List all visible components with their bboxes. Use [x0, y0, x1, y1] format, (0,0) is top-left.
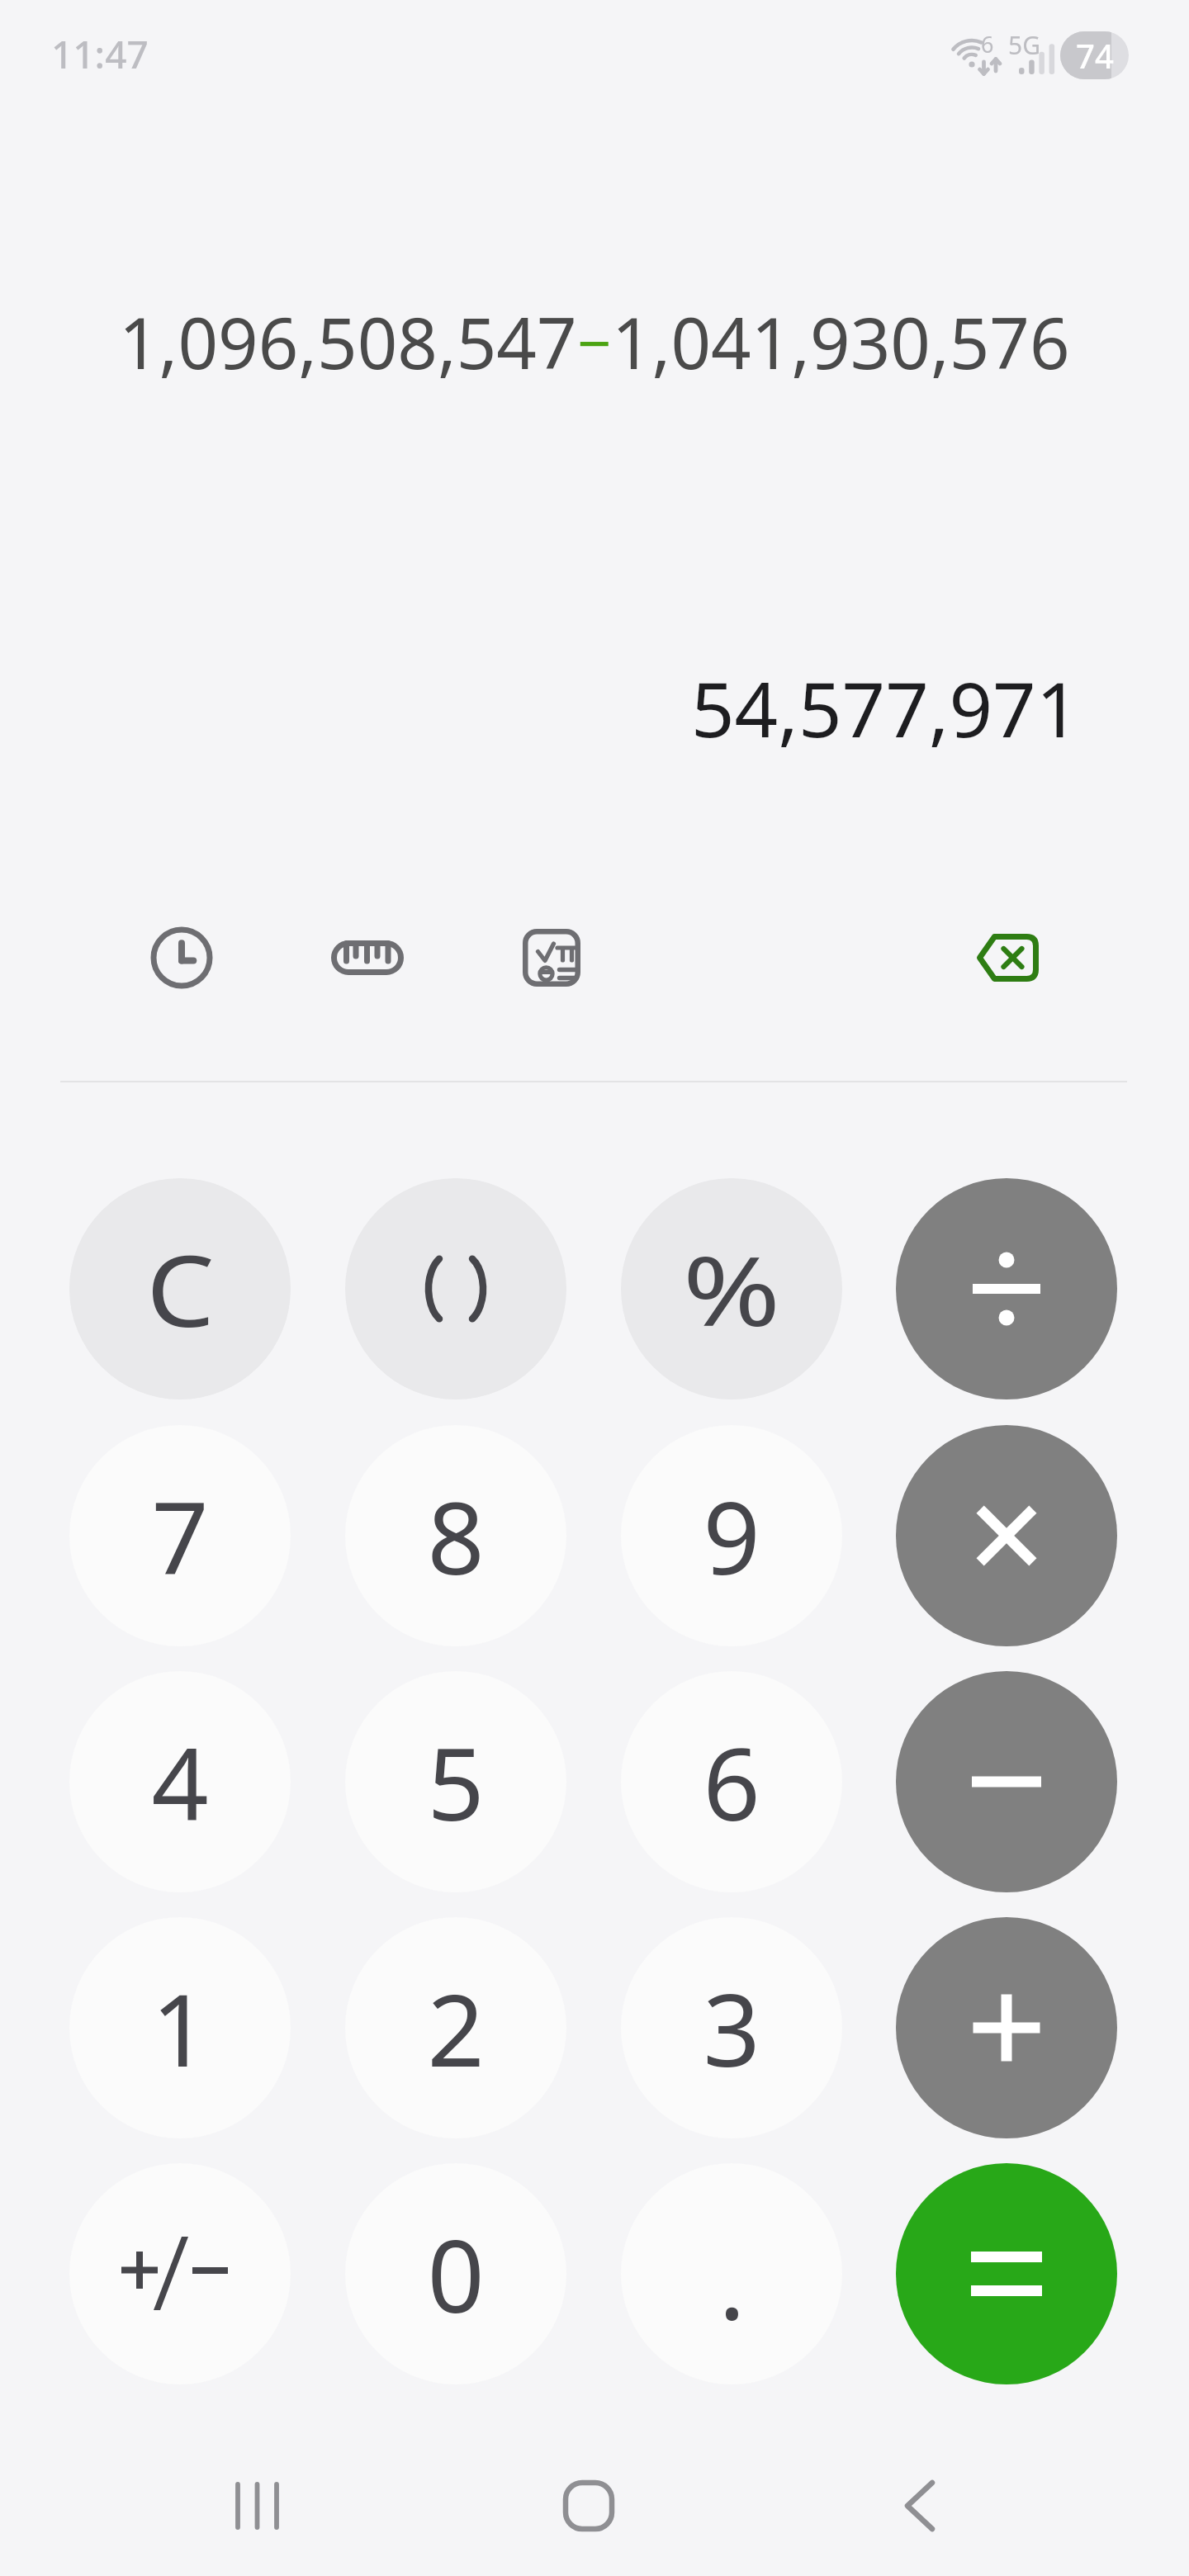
button[interactable]: Subtract — [896, 1671, 1117, 1892]
button[interactable]: Scientific calculator — [506, 925, 597, 991]
staticText: 6 — [981, 29, 994, 59]
button[interactable]: Plus minus — [69, 2163, 291, 2384]
staticText: C — [146, 1223, 215, 1356]
staticText: 7 — [151, 1468, 209, 1604]
button[interactable]: 2 — [345, 1917, 566, 2138]
staticText: 0 — [427, 2206, 485, 2342]
staticText: 5 — [427, 1714, 485, 1850]
button[interactable]: 1 — [69, 1917, 291, 2138]
staticText: % — [682, 1224, 781, 1354]
button[interactable]: 5 — [345, 1671, 566, 1892]
staticText: 9 — [703, 1468, 760, 1604]
button[interactable]: . — [621, 2163, 842, 2384]
button[interactable]: 4 — [69, 1671, 291, 1892]
button[interactable]: % — [621, 1178, 842, 1399]
button[interactable]: 0 — [345, 2163, 566, 2384]
staticText: − — [577, 301, 612, 382]
staticText: 1,041,930,576 — [612, 294, 1070, 390]
button[interactable]: 6 — [621, 1671, 842, 1892]
button[interactable]: Backspace — [962, 925, 1053, 991]
button[interactable]: History — [136, 925, 227, 991]
staticText: 5G — [1008, 28, 1040, 62]
staticText: 1,096,508,547 — [119, 294, 577, 390]
button[interactable]: C — [69, 1178, 291, 1399]
button[interactable]: Parentheses — [345, 1178, 566, 1399]
staticText: 11:47 — [51, 28, 149, 80]
button[interactable]: 9 — [621, 1425, 842, 1646]
staticText: 3 — [703, 1960, 760, 2096]
button[interactable]: Back — [872, 2456, 971, 2555]
button[interactable]: Home — [539, 2456, 638, 2555]
button[interactable]: Add — [896, 1917, 1117, 2138]
button[interactable]: Unit converter — [322, 925, 413, 991]
button[interactable]: 3 — [621, 1917, 842, 2138]
staticText: 1 — [151, 1960, 209, 2096]
staticText: 74 — [1076, 33, 1114, 78]
staticText: 6 — [703, 1714, 760, 1850]
staticText: 4 — [151, 1714, 209, 1850]
button[interactable]: 7 — [69, 1425, 291, 1646]
staticText: . — [718, 2213, 746, 2349]
button[interactable]: 8 — [345, 1425, 566, 1646]
button[interactable]: Multiply — [896, 1425, 1117, 1646]
button[interactable]: Divide — [896, 1178, 1117, 1399]
staticText: 54,577,971 — [691, 656, 1080, 760]
staticText: 8 — [427, 1468, 485, 1604]
staticText: 2 — [427, 1960, 485, 2096]
button[interactable]: Equals — [896, 2163, 1117, 2384]
button[interactable]: Recent apps — [210, 2456, 309, 2555]
